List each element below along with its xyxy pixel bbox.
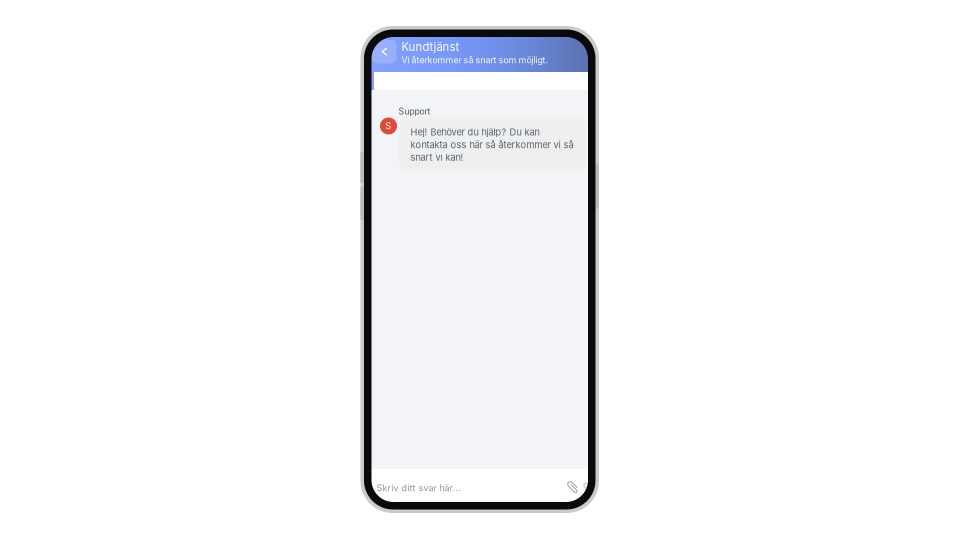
- staticText: Support: [398, 106, 430, 116]
- staticText: Skriv ditt svar här...: [376, 482, 461, 493]
- staticText: Kundtjänst: [401, 40, 459, 54]
- button[interactable]: Skriv ditt svar här...: [371, 469, 461, 502]
- staticText: Hej! Behöver du hjälp? Du kan: [410, 126, 539, 138]
- staticText: kontakta oss här så återkommer vi så: [410, 139, 573, 150]
- staticText: Vi återkommer så snart som möjligt.: [401, 55, 548, 65]
- button[interactable]: Back: [372, 40, 396, 64]
- button[interactable]: Attach file: [557, 469, 587, 502]
- staticText: S: [385, 121, 391, 131]
- staticText: snart vi kan!: [410, 152, 463, 163]
